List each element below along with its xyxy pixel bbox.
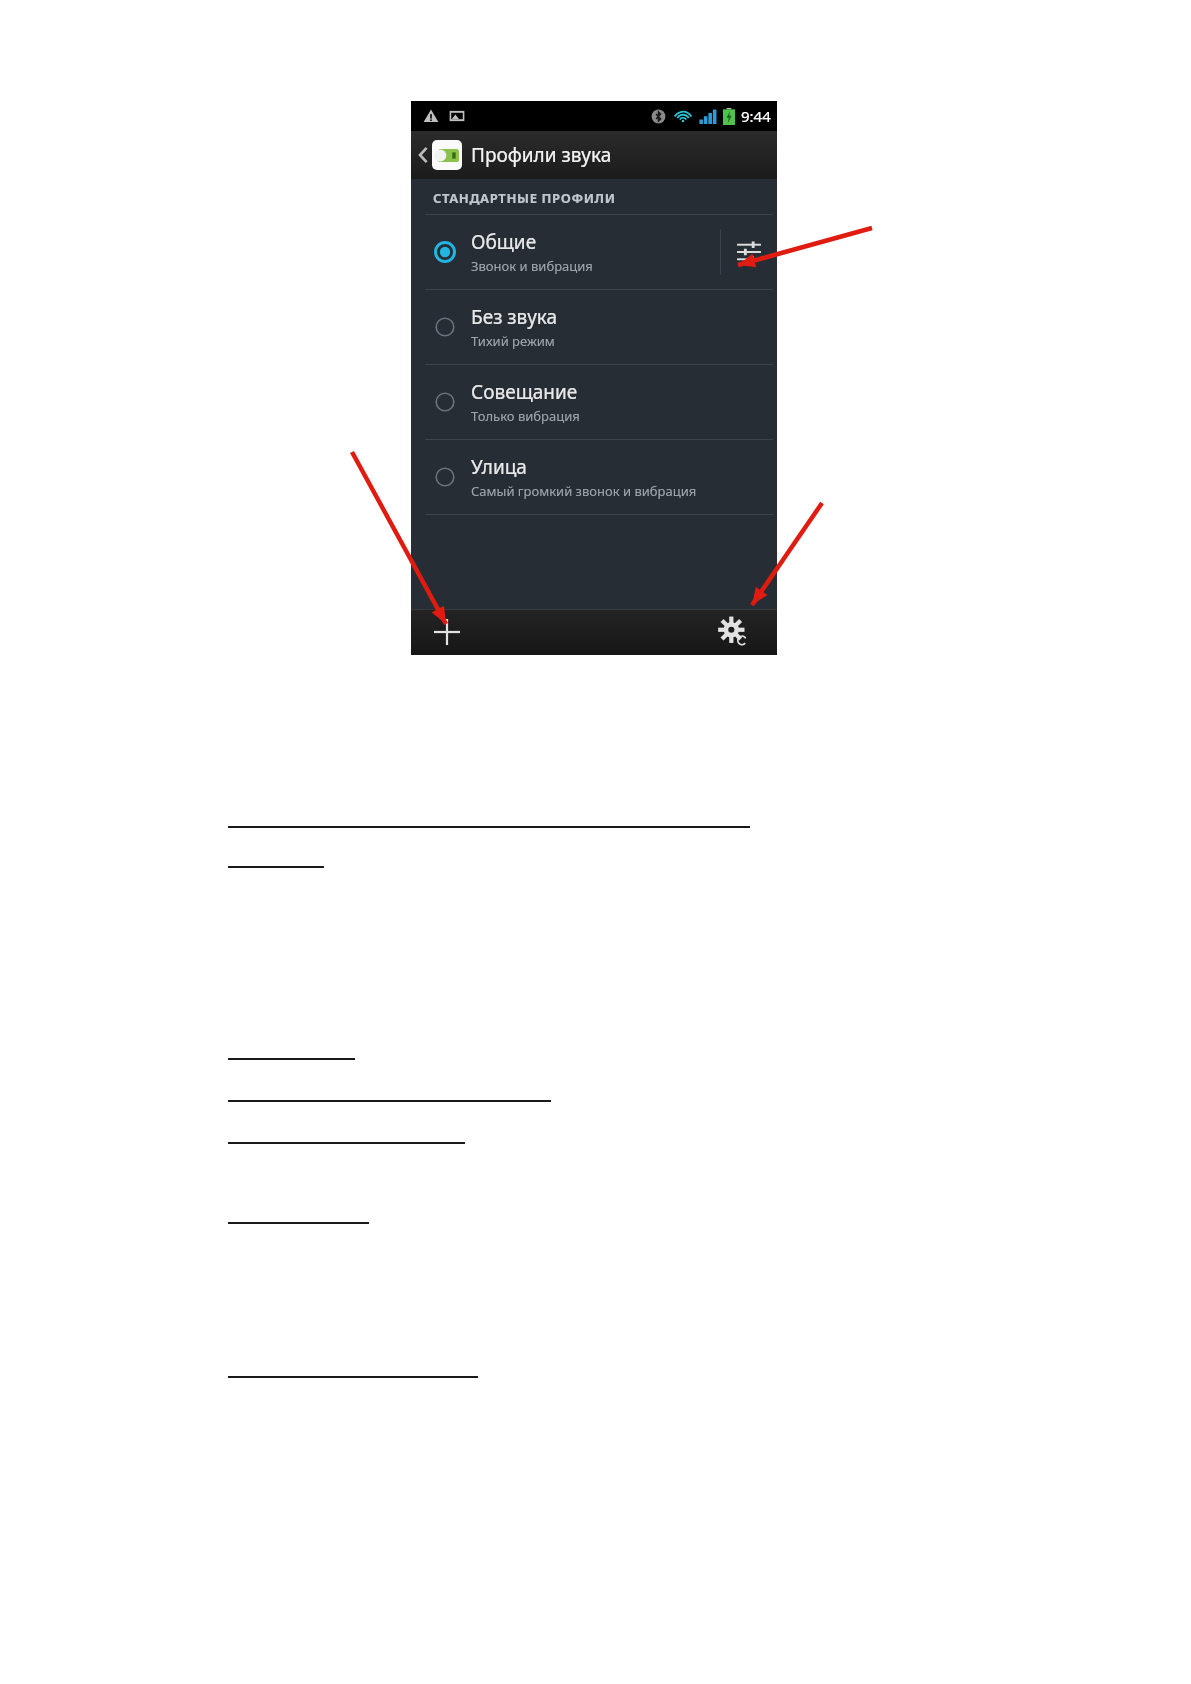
staticText: Без звука bbox=[471, 304, 558, 330]
button[interactable]: Settings bbox=[711, 610, 755, 654]
button[interactable]: Общие bbox=[411, 215, 777, 289]
button[interactable]: Profile settings bbox=[721, 215, 777, 289]
staticText: Общие bbox=[471, 229, 537, 255]
other: Back bbox=[417, 144, 429, 166]
staticText: Улица bbox=[471, 454, 527, 480]
staticText: Совещание bbox=[471, 379, 578, 405]
staticText: 9:44 bbox=[741, 106, 771, 126]
staticText: Только вибрация bbox=[471, 407, 580, 425]
staticText: Самый громкий звонок и вибрация bbox=[471, 482, 697, 500]
button[interactable]: Без звука bbox=[411, 290, 777, 364]
button[interactable]: Совещание bbox=[411, 365, 777, 439]
button[interactable]: Add profile bbox=[425, 610, 469, 654]
button[interactable]: Back bbox=[411, 131, 777, 179]
staticText: Тихий режим bbox=[471, 332, 555, 350]
staticText: Профили звука bbox=[471, 142, 612, 168]
staticText: Звонок и вибрация bbox=[471, 257, 593, 275]
staticText: СТАНДАРТНЫЕ ПРОФИЛИ bbox=[433, 189, 616, 207]
button[interactable]: Улица bbox=[411, 440, 777, 514]
